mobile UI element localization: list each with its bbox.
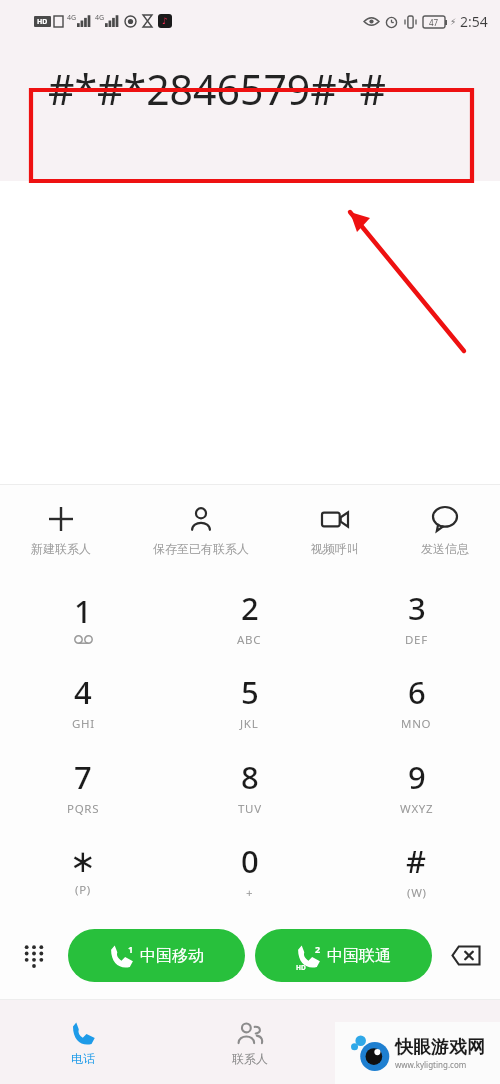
staticText: 中国移动 xyxy=(140,946,204,966)
staticText: 3 xyxy=(408,587,426,629)
button[interactable]: 6 xyxy=(333,659,500,743)
staticText: www.kyligting.com xyxy=(395,1059,467,1070)
staticText: 8 xyxy=(241,756,259,798)
staticText: # xyxy=(406,840,427,882)
staticText: 2:54 xyxy=(460,12,488,31)
staticText: PQRS xyxy=(67,801,100,817)
staticText: 4 xyxy=(74,671,92,713)
staticText: WXYZ xyxy=(400,801,434,817)
staticText: 联系人 xyxy=(232,1051,268,1066)
button[interactable]: 新建联系人 xyxy=(25,500,97,560)
staticText: (P) xyxy=(75,882,91,898)
staticText: 5 xyxy=(241,671,259,713)
button[interactable]: 视频呼叫 xyxy=(305,500,365,560)
staticText: (W) xyxy=(407,885,427,901)
staticText: 中国联通 xyxy=(327,946,391,966)
staticText: JKL xyxy=(240,716,259,732)
staticText: 7 xyxy=(74,756,92,798)
staticText: 保存至已有联系人 xyxy=(153,541,249,556)
staticText: 视频呼叫 xyxy=(311,541,359,556)
button[interactable]: 9 xyxy=(333,744,500,828)
staticText: 47 xyxy=(429,17,439,28)
staticText: ♪ xyxy=(162,16,168,26)
button[interactable]: 1 xyxy=(0,575,166,659)
staticText: ∗ xyxy=(70,843,96,879)
button[interactable] xyxy=(333,1000,500,1084)
button[interactable]: 0 xyxy=(166,828,333,912)
button[interactable]: 8 xyxy=(166,744,333,828)
button[interactable]: 3 xyxy=(333,575,500,659)
staticText: 2 xyxy=(241,587,259,629)
staticText: 新建联系人 xyxy=(31,541,91,556)
staticText: 1 xyxy=(74,590,92,632)
staticText: DEF xyxy=(405,632,428,648)
staticText: GHI xyxy=(72,716,95,732)
staticText: HD xyxy=(296,963,306,972)
button[interactable]: Delete xyxy=(432,912,500,999)
button[interactable]: 发送信息 xyxy=(415,500,475,560)
staticText: 0 xyxy=(241,840,259,882)
staticText: 9 xyxy=(408,756,426,798)
button[interactable]: 7 xyxy=(0,744,166,828)
button[interactable]: 保存至已有联系人 xyxy=(147,500,255,560)
staticText: 2 xyxy=(315,943,321,955)
button[interactable]: 5 xyxy=(166,659,333,743)
staticText: 快眼游戏网 xyxy=(395,1036,485,1059)
staticText: #*#*2846579#*# xyxy=(48,61,386,117)
staticText: 6 xyxy=(408,671,426,713)
button[interactable]: 2 xyxy=(166,575,333,659)
staticText: TUV xyxy=(238,801,262,817)
staticText: 电话 xyxy=(71,1051,95,1066)
button[interactable]: 电话 xyxy=(0,1000,166,1084)
button[interactable]: Keypad xyxy=(0,912,68,999)
staticText: MNO xyxy=(401,716,432,732)
button[interactable]: 4 xyxy=(0,659,166,743)
staticText: HD xyxy=(37,17,48,27)
staticText: 发送信息 xyxy=(421,541,469,556)
button[interactable]: # xyxy=(333,828,500,912)
staticText: 1 xyxy=(128,943,134,955)
button[interactable]: 联系人 xyxy=(166,1000,333,1084)
staticText: + xyxy=(246,885,254,901)
staticText: ABC xyxy=(237,632,262,648)
staticText: 4G xyxy=(95,13,105,23)
button[interactable]: 1 xyxy=(68,929,245,982)
staticText: 4G xyxy=(67,13,77,23)
button[interactable]: 2 xyxy=(255,929,432,982)
button[interactable]: ∗ xyxy=(0,828,166,912)
staticText: ⚡ xyxy=(450,17,457,27)
